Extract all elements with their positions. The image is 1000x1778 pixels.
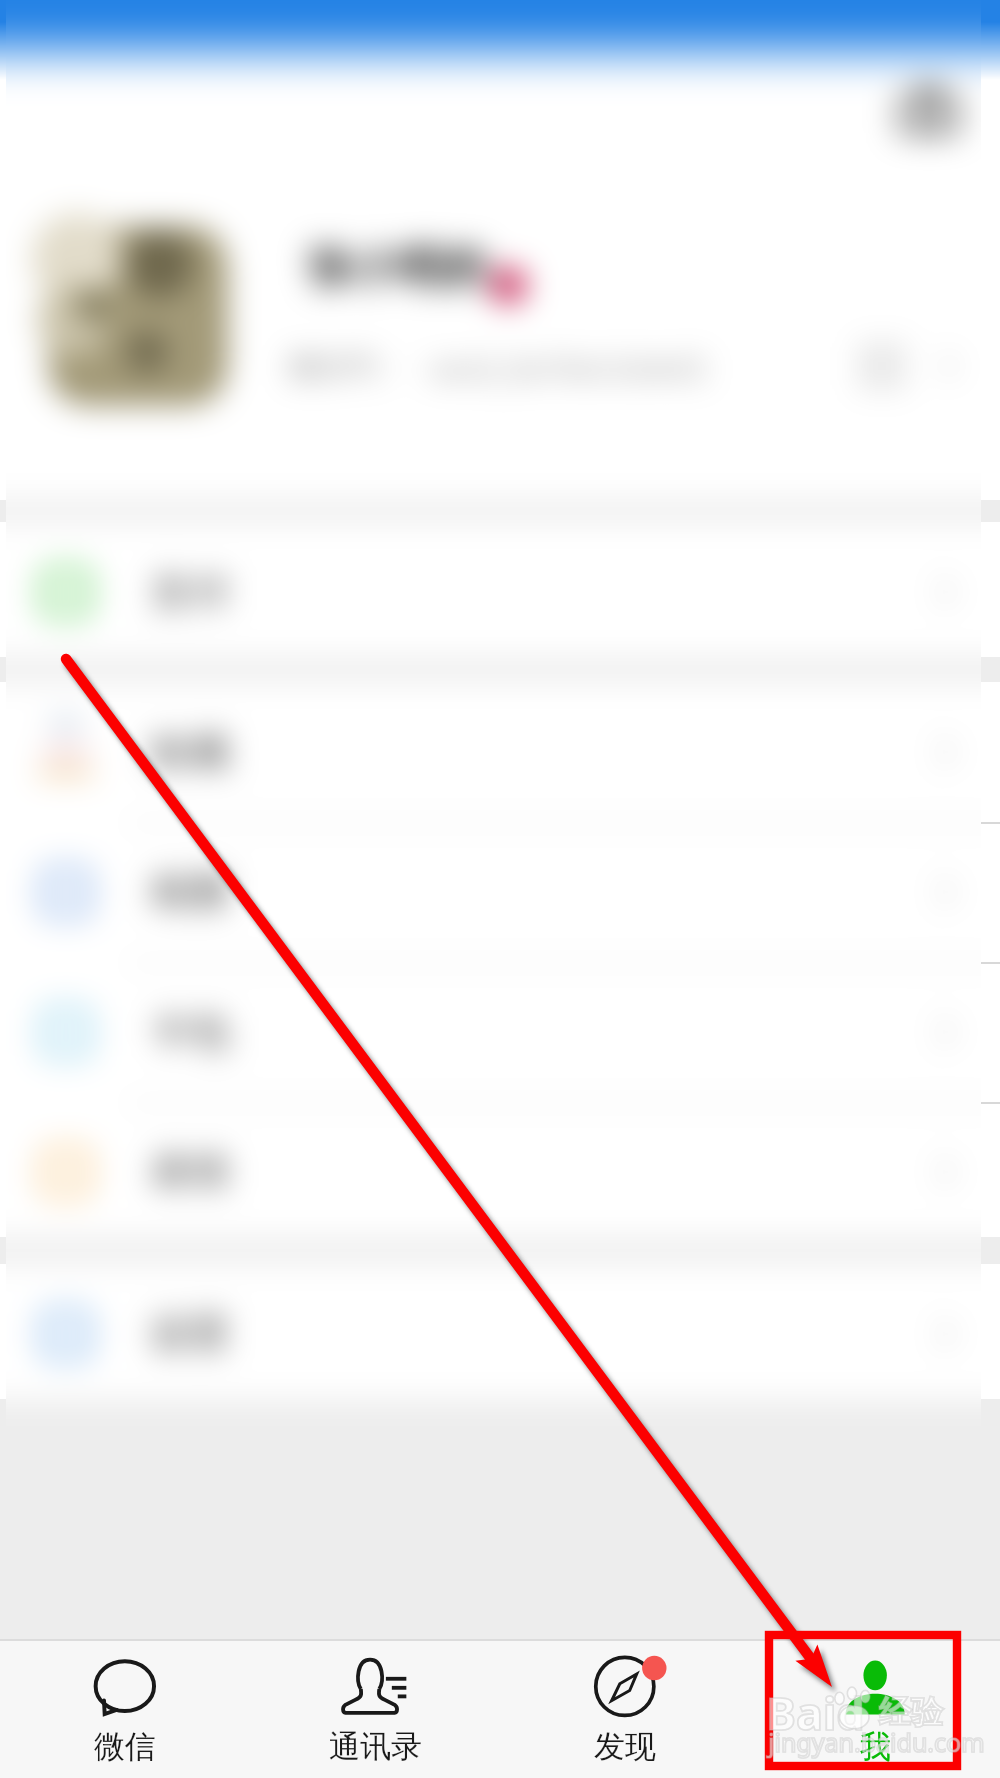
staticText: 微信号： <box>288 348 408 386</box>
staticText: 设置 <box>150 1308 230 1358</box>
staticText: 支付 <box>150 566 230 616</box>
staticText: 设置 <box>150 1308 230 1358</box>
staticText: 表情 <box>150 1146 230 1196</box>
staticText: Baid <box>766 1682 865 1743</box>
staticText: 张小明的 <box>307 240 487 297</box>
staticText: 相册 <box>150 866 230 916</box>
staticText: 收藏 <box>150 726 230 776</box>
staticText: Baid <box>766 1682 865 1743</box>
button[interactable]: 我 <box>750 1639 1000 1778</box>
button[interactable]: 通讯录 <box>250 1639 500 1778</box>
staticText: 张小明的 <box>307 240 487 297</box>
staticText: wxid_8a7b6c5d4ef2 <box>430 348 708 389</box>
staticText: 微信号： <box>288 348 408 386</box>
staticText: 经验 <box>879 1692 943 1732</box>
staticText: 发现 <box>594 1727 656 1766</box>
staticText: wxid_8a7b6c5d4ef2 <box>430 348 708 389</box>
staticText: 通讯录 <box>329 1727 422 1766</box>
staticText: 表情 <box>150 1146 230 1196</box>
button[interactable]: 发现 <box>500 1639 750 1778</box>
staticText: 我 <box>860 1727 891 1766</box>
staticText: jingyan.baidu.com <box>768 1725 985 1759</box>
staticText: 经验 <box>879 1692 943 1732</box>
staticText: 卡包 <box>150 1006 230 1056</box>
staticText: jingyan.baidu.com <box>768 1725 985 1759</box>
staticText: 卡包 <box>150 1006 230 1056</box>
staticText: 相册 <box>150 866 230 916</box>
staticText: 微信 <box>94 1727 156 1766</box>
button[interactable]: 微信 <box>0 1639 250 1778</box>
staticText: 支付 <box>150 566 230 616</box>
staticText: 收藏 <box>150 726 230 776</box>
